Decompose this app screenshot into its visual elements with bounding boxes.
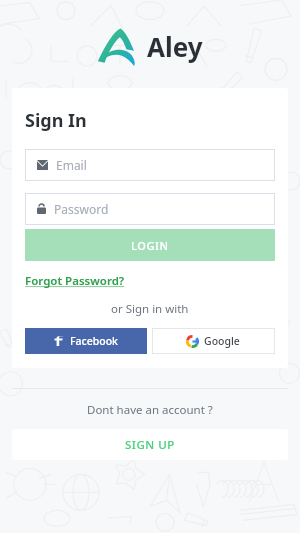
staticText: Password bbox=[54, 201, 109, 217]
button[interactable]: Forgot Password? bbox=[25, 273, 125, 289]
button[interactable]: Password bbox=[25, 193, 275, 225]
button[interactable]: Email bbox=[25, 149, 275, 181]
staticText: LOGIN bbox=[131, 238, 169, 253]
staticText: or Sign in with bbox=[111, 301, 189, 317]
button[interactable]: SIGN UP bbox=[12, 429, 288, 460]
button[interactable]: Google bbox=[152, 328, 275, 354]
staticText: SIGN UP bbox=[125, 437, 175, 453]
staticText: Forgot Password? bbox=[25, 273, 125, 289]
button[interactable]: Facebook bbox=[25, 328, 147, 354]
staticText: Email bbox=[56, 157, 87, 173]
staticText: Dont have an account ? bbox=[87, 402, 213, 418]
staticText: Sign In bbox=[25, 108, 87, 133]
button[interactable]: LOGIN bbox=[25, 229, 275, 261]
staticText: Aley bbox=[147, 29, 203, 64]
staticText: Facebook bbox=[70, 334, 118, 348]
staticText: Google bbox=[204, 334, 240, 348]
